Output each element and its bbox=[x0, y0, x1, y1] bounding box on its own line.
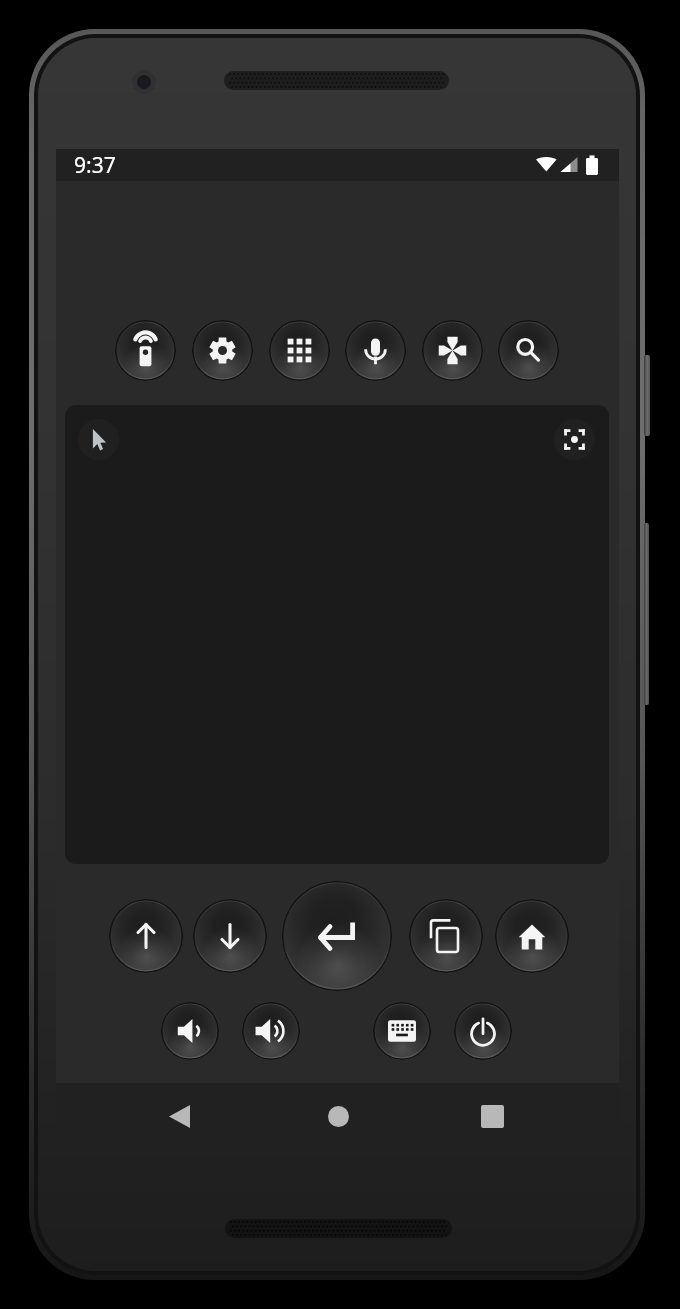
button[interactable]: Apps bbox=[269, 320, 330, 381]
button[interactable]: Up bbox=[109, 899, 183, 973]
button[interactable]: Voice search bbox=[345, 320, 406, 381]
button[interactable]: Volume up bbox=[242, 1002, 300, 1060]
button[interactable]: Volume down bbox=[161, 1002, 219, 1060]
button[interactable]: Home bbox=[299, 1083, 377, 1149]
button[interactable]: Recent apps bbox=[453, 1083, 531, 1149]
button[interactable]: Search bbox=[498, 320, 559, 381]
button[interactable]: Pointer mode bbox=[78, 419, 119, 460]
button[interactable]: Back bbox=[140, 1083, 218, 1149]
button[interactable]: Power bbox=[454, 1002, 512, 1060]
button[interactable]: Center focus bbox=[554, 419, 595, 460]
button[interactable]: Select bbox=[282, 881, 392, 991]
button[interactable]: Touchpad bbox=[65, 405, 609, 864]
button[interactable]: Settings bbox=[192, 320, 253, 381]
button[interactable]: Recent apps bbox=[409, 899, 483, 973]
button[interactable]: Down bbox=[193, 899, 267, 973]
button[interactable]: Keyboard bbox=[373, 1002, 431, 1060]
staticText: 9:37 bbox=[74, 151, 116, 180]
button[interactable]: Home bbox=[495, 899, 569, 973]
button[interactable]: D-pad bbox=[422, 320, 483, 381]
button[interactable]: Remote bbox=[115, 320, 176, 381]
